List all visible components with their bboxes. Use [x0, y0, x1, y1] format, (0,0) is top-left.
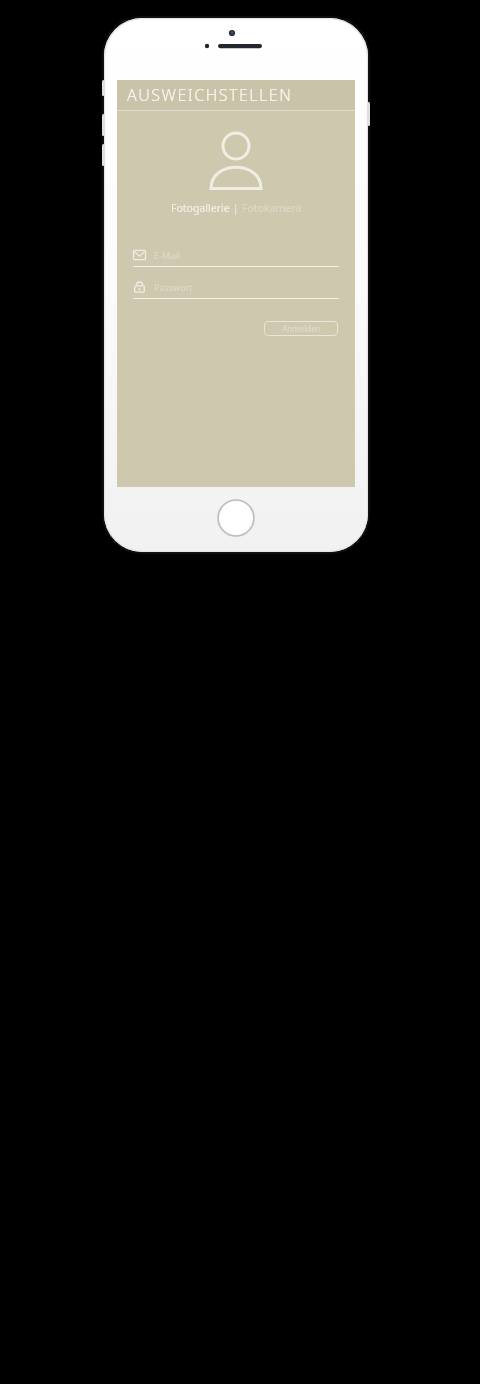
staticText: E-Mail [154, 249, 180, 261]
button[interactable]: E-Mail [133, 249, 339, 267]
button[interactable]: Fotogallerie [171, 201, 230, 215]
button[interactable]: AUSWEICHSTELLEN [117, 80, 355, 110]
staticText: Anmelden [282, 323, 321, 334]
staticText: | [230, 201, 242, 215]
staticText: Passwort [154, 281, 193, 293]
staticText: AUSWEICHSTELLEN [127, 84, 293, 106]
button[interactable]: Passwort [133, 281, 339, 299]
staticText: Fotokamera [242, 201, 302, 215]
button[interactable]: Fotokamera [242, 201, 302, 215]
button[interactable]: Anmelden [264, 321, 338, 336]
staticText: Fotogallerie [171, 201, 230, 215]
button[interactable]: Home [217, 499, 255, 537]
